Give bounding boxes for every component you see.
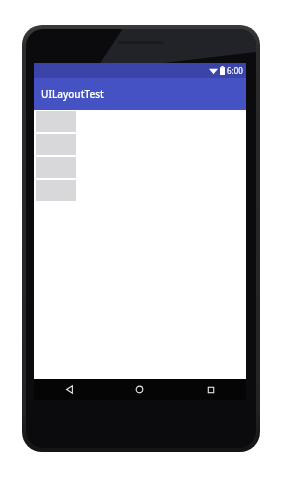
staticText: UILayoutTest: [41, 87, 104, 101]
button[interactable]: Recent apps: [175, 379, 246, 400]
staticText: 6:00: [227, 65, 243, 76]
button[interactable]: Home: [104, 379, 175, 400]
button[interactable]: UILayoutTest: [34, 78, 246, 110]
button[interactable]: Back: [34, 379, 104, 400]
